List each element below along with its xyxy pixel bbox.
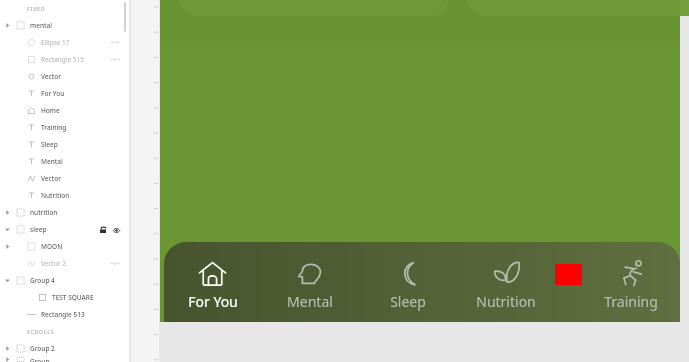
button[interactable]: Vector 2 [0, 255, 130, 272]
button[interactable]: Training [0, 119, 130, 136]
staticText: Group [30, 357, 50, 362]
button[interactable]: Vector [0, 170, 130, 187]
staticText: Ellipse 17 [41, 38, 70, 47]
button[interactable]: Group [0, 357, 130, 362]
staticText: Vector 2 [41, 259, 66, 268]
staticText: FIXED [27, 5, 46, 12]
button[interactable]: For You [164, 252, 261, 318]
button[interactable]: Training [582, 252, 680, 318]
staticText: For You [41, 89, 65, 98]
staticText: For You [188, 292, 238, 311]
button[interactable]: Nutrition [0, 187, 130, 204]
button[interactable]: For You [0, 85, 130, 102]
button[interactable]: MOON [0, 238, 130, 255]
button[interactable]: TEST SQUARE [0, 289, 130, 306]
staticText: Nutrition [476, 292, 536, 311]
staticText: MOON [41, 242, 63, 251]
button[interactable]: Group 2 [0, 340, 130, 357]
staticText: sleep [30, 225, 47, 234]
staticText: Mental [287, 292, 333, 311]
staticText: Training [41, 123, 67, 132]
staticText: Rectangle 515 [41, 55, 85, 64]
staticText: Rectangle 513 [41, 310, 85, 319]
button[interactable]: Mental [261, 252, 359, 318]
staticText: SCROLLS [27, 328, 55, 335]
button[interactable]: nutrition [0, 204, 130, 221]
button[interactable]: Rectangle 513 [0, 306, 130, 323]
staticText: Sleep [390, 292, 426, 311]
button[interactable]: sleep [0, 221, 130, 238]
staticText: Nutrition [41, 191, 70, 200]
button[interactable]: Group 4 [0, 272, 130, 289]
button[interactable]: Lock layer [98, 225, 108, 235]
button[interactable]: Ellipse 17 [0, 34, 130, 51]
button[interactable]: Vector [0, 68, 130, 85]
staticText: Group 2 [30, 344, 55, 353]
button[interactable]: Mental [0, 153, 130, 170]
staticText: Vector [41, 72, 62, 81]
button[interactable]: Sleep [0, 136, 130, 153]
staticText: nutrition [30, 208, 58, 217]
button[interactable]: Sleep [359, 252, 457, 318]
button[interactable]: Nutrition [457, 252, 555, 318]
staticText: mental [30, 21, 52, 30]
staticText: TEST SQUARE [52, 293, 94, 302]
staticText: Training [604, 292, 658, 311]
button[interactable]: Rectangle 515 [0, 51, 130, 68]
button[interactable]: mental [0, 17, 130, 34]
staticText: Sleep [41, 140, 58, 149]
button[interactable]: Toggle visibility [111, 225, 121, 235]
staticText: Vector [41, 174, 62, 183]
staticText: Home [41, 106, 60, 115]
staticText: Mental [41, 157, 63, 166]
staticText: Group 4 [30, 276, 55, 285]
button[interactable]: Home [0, 102, 130, 119]
